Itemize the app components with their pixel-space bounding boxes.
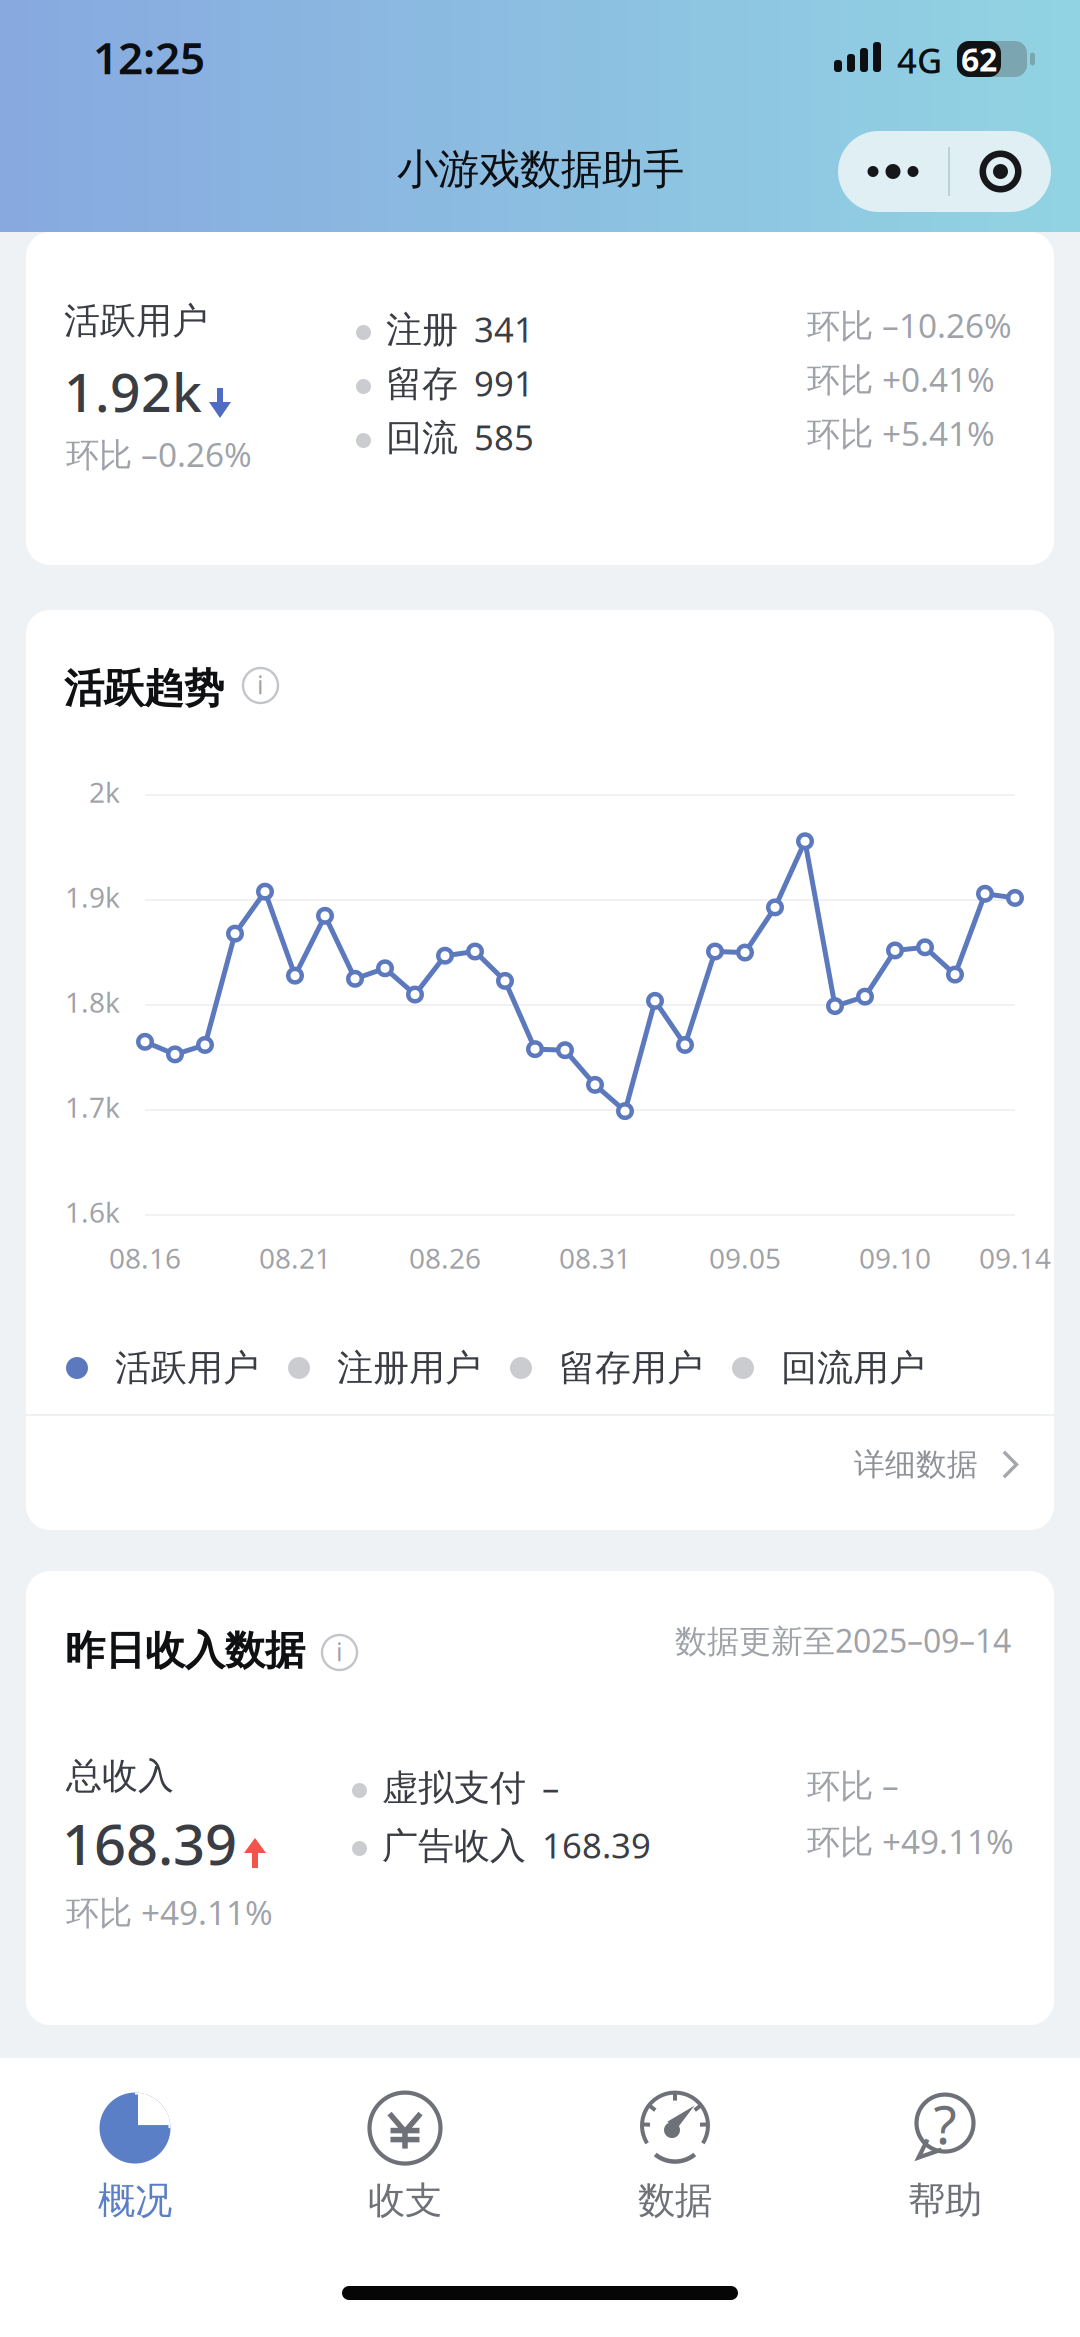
staticText: 991 bbox=[474, 360, 534, 406]
staticText: 总收入 bbox=[66, 1754, 174, 1798]
staticText: 1.8k bbox=[65, 983, 120, 1021]
staticText: 详细数据 bbox=[854, 1446, 978, 1483]
staticText: 数据更新至2025–09–14 bbox=[675, 1619, 1011, 1661]
staticText: 1.7k bbox=[65, 1088, 120, 1126]
staticText: 活跃用户 bbox=[115, 1346, 259, 1390]
staticText: 环比 +0.41% bbox=[807, 357, 995, 401]
staticText: 环比 –0.26% bbox=[66, 432, 252, 476]
staticText: 数据 bbox=[638, 2178, 712, 2223]
staticText: 留存用户 bbox=[559, 1346, 703, 1390]
staticText: 广告收入 bbox=[382, 1824, 526, 1868]
staticText: 注册 bbox=[386, 308, 458, 352]
staticText: 环比 +49.11% bbox=[807, 1819, 1014, 1863]
staticText: 09.05 bbox=[709, 1239, 781, 1277]
staticText: i bbox=[257, 668, 264, 701]
button[interactable]: 收支 bbox=[270, 2078, 540, 2238]
button[interactable]: Close mini program bbox=[950, 131, 1051, 212]
staticText: 留存 bbox=[386, 362, 458, 406]
staticText: 活跃用户 bbox=[64, 299, 208, 343]
staticText: 08.21 bbox=[259, 1239, 331, 1277]
button[interactable]: 概况 bbox=[0, 2078, 270, 2238]
staticText: 08.26 bbox=[409, 1239, 481, 1277]
staticText: 环比 +49.11% bbox=[66, 1890, 273, 1934]
staticText: 环比 –10.26% bbox=[807, 303, 1012, 347]
staticText: 回流用户 bbox=[781, 1346, 925, 1390]
staticText: 概况 bbox=[98, 2178, 172, 2223]
staticText: 1.92k bbox=[64, 356, 202, 427]
staticText: 09.10 bbox=[859, 1239, 931, 1277]
button[interactable]: ? bbox=[810, 2078, 1080, 2238]
staticText: 585 bbox=[474, 414, 534, 460]
staticText: – bbox=[542, 1764, 559, 1810]
staticText: 08.31 bbox=[559, 1239, 631, 1277]
staticText: 62 bbox=[961, 38, 997, 80]
button[interactable]: More options bbox=[838, 131, 948, 212]
staticText: 小游戏数据助手 bbox=[397, 144, 684, 195]
button[interactable]: 详细数据 bbox=[802, 1416, 1054, 1513]
staticText: 1.9k bbox=[65, 878, 120, 916]
button[interactable]: 数据 bbox=[540, 2078, 810, 2238]
staticText: 4G bbox=[897, 37, 942, 83]
staticText: 收支 bbox=[368, 2178, 442, 2223]
staticText: 环比 – bbox=[807, 1763, 899, 1807]
staticText: 341 bbox=[474, 306, 534, 352]
staticText: 168.39 bbox=[62, 1806, 237, 1880]
staticText: ? bbox=[933, 2088, 956, 2159]
staticText: 2k bbox=[89, 773, 120, 811]
staticText: 昨日收入数据 bbox=[65, 1626, 305, 1675]
staticText: 168.39 bbox=[542, 1822, 651, 1868]
staticText: 帮助 bbox=[908, 2178, 982, 2223]
staticText: 虚拟支付 bbox=[382, 1766, 526, 1810]
staticText: 注册用户 bbox=[337, 1346, 481, 1390]
staticText: 环比 +5.41% bbox=[807, 411, 995, 455]
staticText: i bbox=[336, 1635, 343, 1668]
staticText: 回流 bbox=[386, 416, 458, 460]
staticText: 12:25 bbox=[93, 28, 205, 86]
staticText: 08.16 bbox=[109, 1239, 181, 1277]
staticText: 09.14 bbox=[979, 1239, 1051, 1277]
staticText: 1.6k bbox=[65, 1193, 120, 1231]
staticText: 活跃趋势 bbox=[64, 664, 224, 713]
